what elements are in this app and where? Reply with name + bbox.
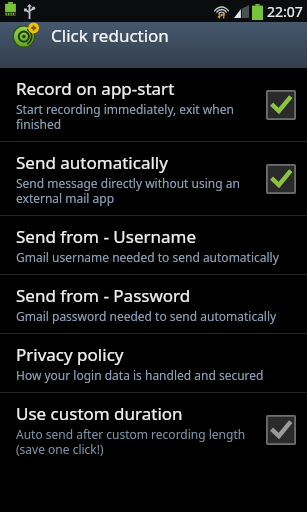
staticText: Send from - Password [16,284,191,307]
button[interactable]: Privacy policy [0,334,307,392]
button[interactable]: Use custom duration [0,393,307,466]
staticText: Send message directly without using an e… [16,175,256,206]
staticText: Send automatically [16,151,168,174]
button[interactable]: Enabled, checkbox [266,164,296,194]
staticText: Gmail username needed to send automatica… [16,249,279,265]
staticText: Privacy policy [16,343,124,366]
staticText: 22:07 [267,2,303,21]
staticText: Start recording immediately, exit when f… [16,101,256,132]
button[interactable]: Send automatically [0,142,307,215]
staticText: Auto send after custom recording length … [16,426,256,457]
staticText: Send from - Username [16,225,197,248]
staticText: Record on app-start [16,77,175,100]
staticText: Gmail password needed to send automatica… [16,308,277,324]
staticText: Click reduction [51,24,169,47]
button[interactable]: Enabled, checkbox [266,90,296,120]
staticText: How your login data is handled and secur… [16,367,264,383]
staticText: Use custom duration [16,402,183,425]
button[interactable]: Send from - Password [0,275,307,333]
button[interactable]: Checkbox [266,415,296,445]
button[interactable]: Send from - Username [0,216,307,274]
button[interactable]: Record on app-start [0,68,307,141]
